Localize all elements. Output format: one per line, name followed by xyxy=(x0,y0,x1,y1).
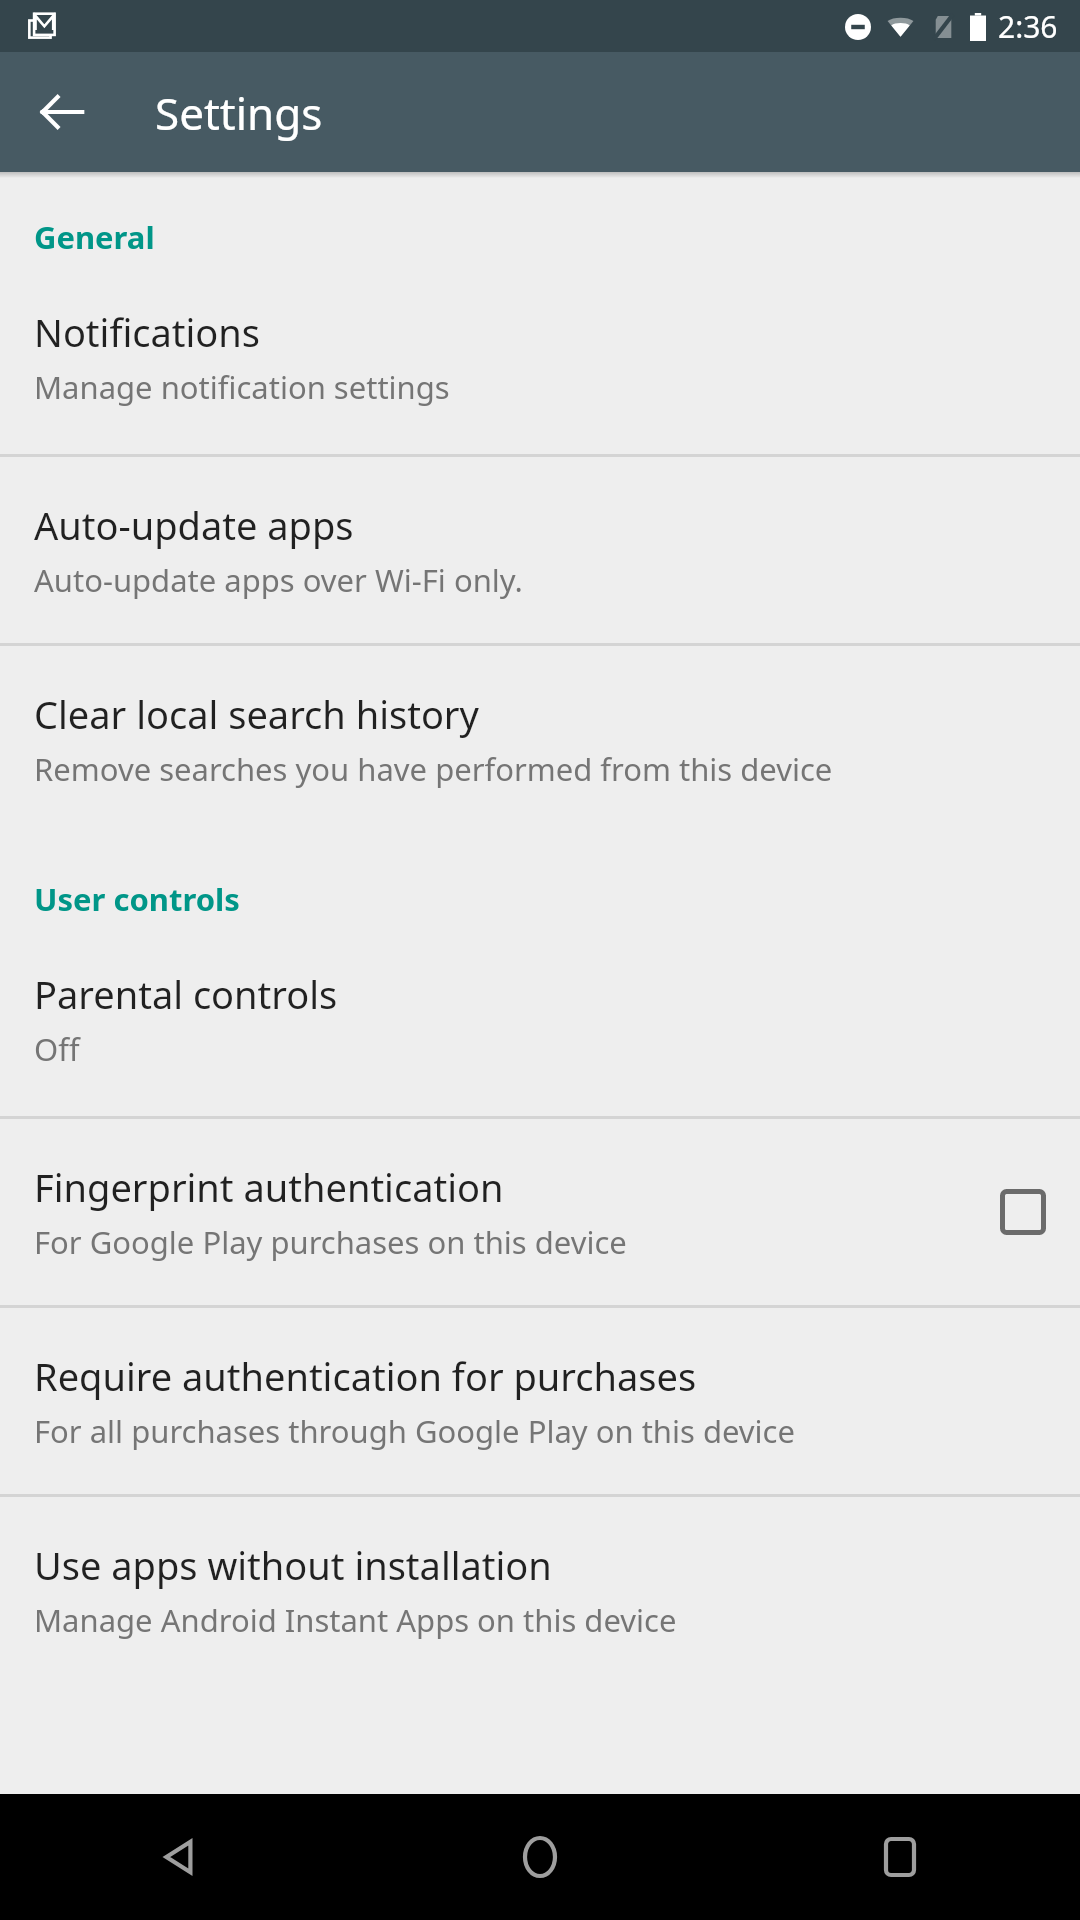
staticText: Clear local search history xyxy=(34,688,479,740)
button[interactable]: Fingerprint authentication xyxy=(0,1119,1080,1305)
staticText: Settings xyxy=(155,83,323,143)
staticText: Fingerprint authentication xyxy=(34,1161,504,1213)
staticText: Manage notification settings xyxy=(34,366,450,408)
staticText: Off xyxy=(34,1028,80,1070)
staticText: Remove searches you have performed from … xyxy=(34,748,833,790)
staticText: Notifications xyxy=(34,306,261,358)
button[interactable]: Back xyxy=(0,1794,360,1920)
staticText: User controls xyxy=(34,878,240,920)
button[interactable]: Auto-update apps xyxy=(0,457,1080,643)
staticText: Require authentication for purchases xyxy=(34,1350,697,1402)
staticText: Parental controls xyxy=(34,968,338,1020)
staticText: Auto-update apps over Wi-Fi only. xyxy=(34,559,523,601)
button[interactable]: Back xyxy=(14,64,110,160)
button[interactable]: Clear local search history xyxy=(0,646,1080,832)
staticText: For all purchases through Google Play on… xyxy=(34,1410,795,1452)
staticText: Auto-update apps xyxy=(34,499,354,551)
button[interactable]: Notifications xyxy=(0,258,1080,454)
button[interactable]: Recent apps xyxy=(720,1794,1080,1920)
staticText: Manage Android Instant Apps on this devi… xyxy=(34,1599,677,1641)
button[interactable]: Use apps without installation xyxy=(0,1497,1080,1683)
button[interactable]: Parental controls xyxy=(0,920,1080,1116)
button[interactable]: Home xyxy=(360,1794,720,1920)
staticText: General xyxy=(34,216,155,258)
staticText: Use apps without installation xyxy=(34,1539,552,1591)
button[interactable]: Require authentication for purchases xyxy=(0,1308,1080,1494)
staticText: 2:36 xyxy=(998,6,1058,47)
staticText: For Google Play purchases on this device xyxy=(34,1221,627,1263)
